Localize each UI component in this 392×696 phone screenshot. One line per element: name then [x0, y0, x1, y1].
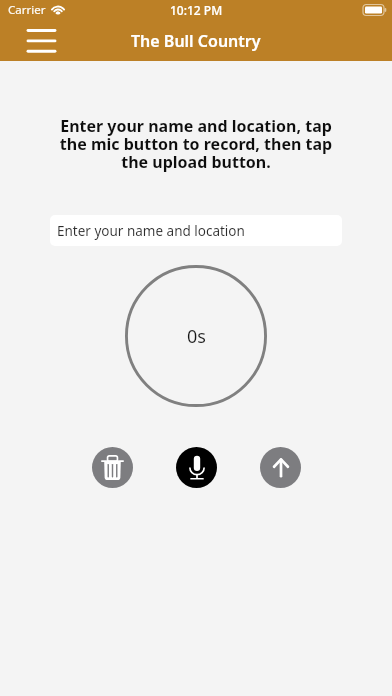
- button[interactable]: Upload recording: [260, 447, 301, 488]
- button[interactable]: Enter your name and location: [50, 215, 342, 246]
- button[interactable]: Record: [176, 447, 217, 488]
- staticText: 10:12 PM: [170, 2, 223, 18]
- staticText: 0s: [187, 324, 206, 349]
- button[interactable]: Delete recording: [92, 447, 133, 488]
- staticText: The Bull Country: [131, 30, 261, 52]
- button[interactable]: Open navigation menu: [14, 20, 69, 61]
- staticText: Carrier: [8, 2, 46, 18]
- staticText: Enter your name and location, tap the mi…: [54, 115, 338, 173]
- staticText: Enter your name and location: [57, 222, 245, 240]
